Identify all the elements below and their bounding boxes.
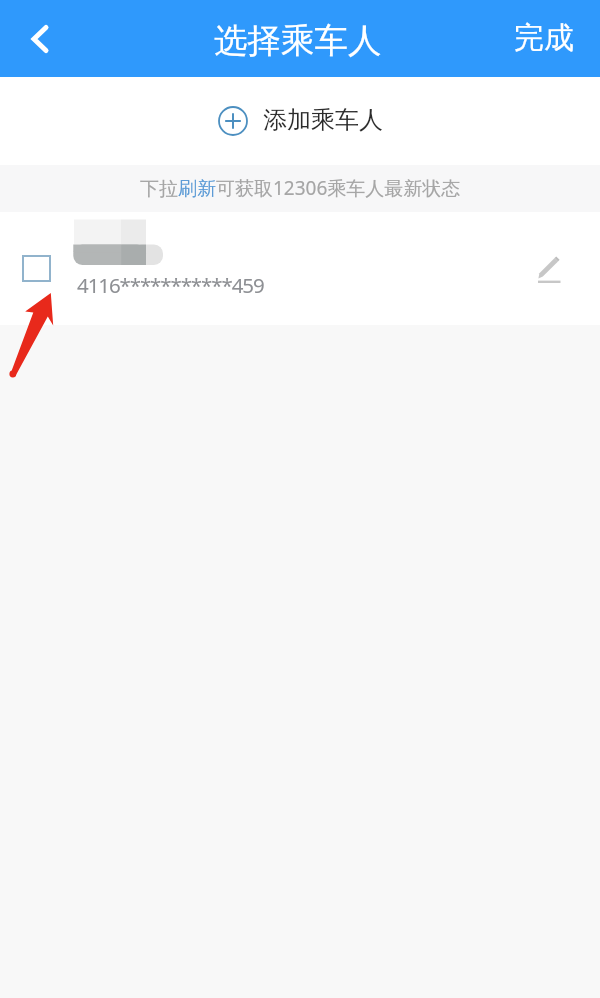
button[interactable]: Select passenger (0, 212, 600, 325)
button[interactable]: 添加乘车人 (0, 77, 600, 165)
staticText: 完成 (514, 19, 574, 57)
staticText: 下拉刷新可获取12306乘车人最新状态 (140, 175, 461, 201)
button[interactable]: Edit (526, 246, 572, 294)
button[interactable]: Select passenger (22, 255, 51, 282)
staticText: 添加乘车人 (263, 105, 383, 135)
button[interactable]: Back (0, 0, 80, 77)
button[interactable]: 完成 (494, 6, 600, 72)
staticText: 选择乘车人 (214, 20, 382, 62)
staticText: 4116***********459 (77, 271, 264, 299)
